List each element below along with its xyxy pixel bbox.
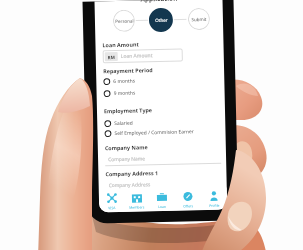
staticText: VISA <box>108 205 116 210</box>
staticText: Other <box>155 17 168 23</box>
staticText: Repayment Period <box>103 66 153 74</box>
button[interactable]: 9 months <box>103 90 136 97</box>
staticText: Members <box>129 204 145 210</box>
staticText: Submit <box>191 16 207 22</box>
staticText: Loan Amount <box>121 52 153 60</box>
staticText: Company Name <box>108 155 145 163</box>
staticText: Employment Type <box>104 106 153 114</box>
button[interactable]: Profile <box>201 187 227 210</box>
staticText: RM <box>108 54 116 60</box>
button[interactable]: 6 months <box>103 78 135 85</box>
staticText: Application <box>140 0 178 3</box>
staticText: Personal <box>115 18 134 24</box>
staticText: Profile <box>209 203 220 208</box>
button[interactable]: Members <box>124 189 149 212</box>
staticText: Salaried <box>114 120 133 127</box>
button[interactable]: Personal <box>113 10 135 32</box>
staticText: Company Name <box>105 143 148 151</box>
button[interactable]: Loan <box>149 189 175 211</box>
button[interactable]: VISA <box>99 190 124 212</box>
button[interactable]: Self Employed / Commision Earner <box>104 128 194 137</box>
staticText: 9 months <box>113 90 136 97</box>
staticText: Company Address 1 <box>105 169 158 177</box>
button[interactable]: Salaried <box>104 120 133 127</box>
button[interactable]: Offers <box>175 188 201 211</box>
staticText: Company Address <box>109 181 151 189</box>
staticText: Loan Amount <box>102 40 139 48</box>
button[interactable]: RM <box>103 48 183 63</box>
button[interactable]: Other <box>149 8 173 32</box>
staticText: Offers <box>183 203 193 208</box>
button[interactable]: Submit <box>188 8 210 30</box>
staticText: 6 months <box>113 78 135 85</box>
staticText: Loan <box>158 204 166 209</box>
staticText: Self Employed / Commision Earner <box>114 128 194 137</box>
